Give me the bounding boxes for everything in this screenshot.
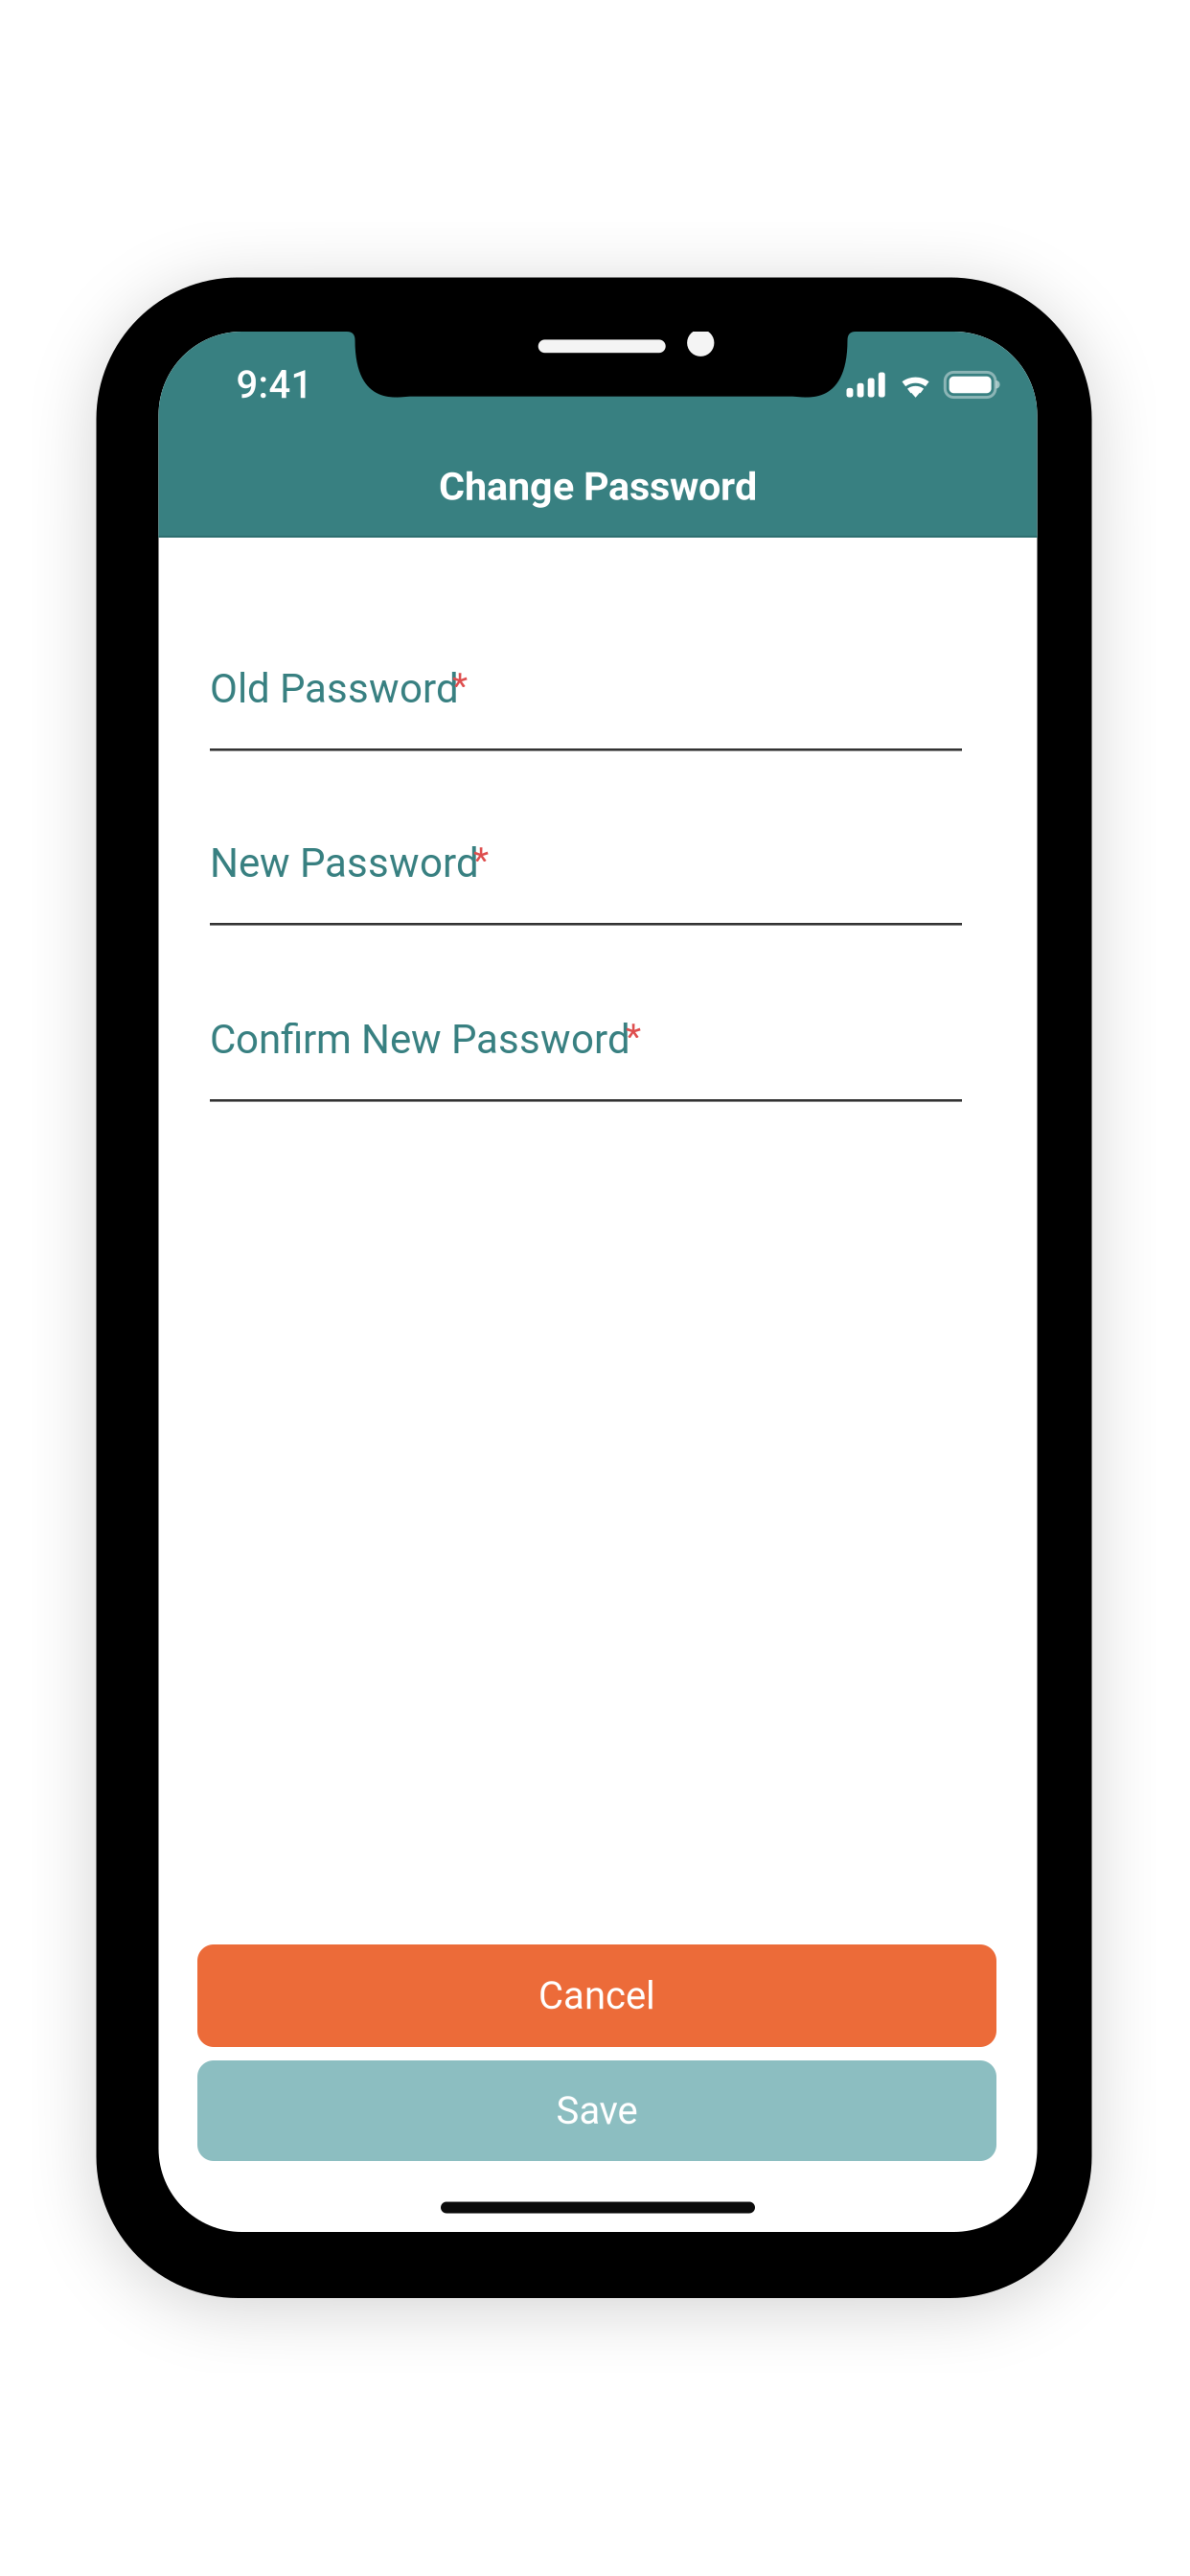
staticText: Confirm New Password <box>210 1016 630 1063</box>
staticText: Change Password <box>439 463 757 510</box>
staticText: * <box>626 1015 641 1057</box>
staticText: Save <box>556 2088 638 2133</box>
staticText: Cancel <box>538 1973 655 2018</box>
staticText: * <box>452 665 468 706</box>
button[interactable]: Save <box>197 2060 996 2161</box>
button[interactable]: Cancel <box>197 1944 996 2047</box>
staticText: Old Password <box>210 665 459 712</box>
staticText: 9:41 <box>236 362 313 407</box>
staticText: New Password <box>210 839 479 887</box>
staticText: * <box>473 839 489 881</box>
